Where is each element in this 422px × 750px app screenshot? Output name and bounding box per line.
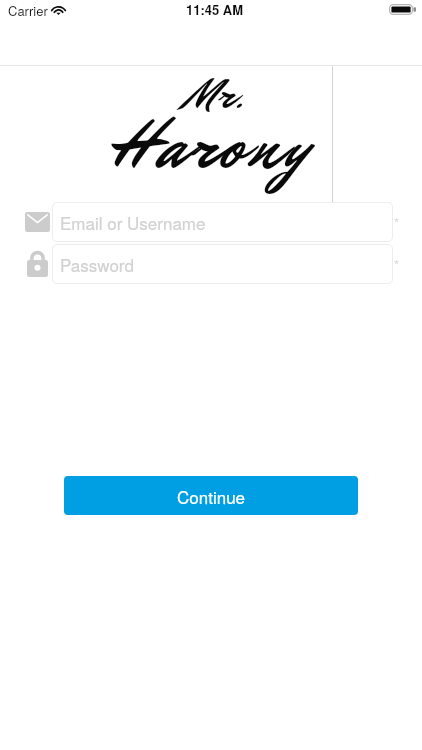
other: Battery <box>389 4 416 15</box>
staticText: 11:45 AM <box>186 0 244 19</box>
staticText: Carrier <box>8 1 48 20</box>
other: Password <box>27 251 48 277</box>
button[interactable]: Continue <box>64 476 358 515</box>
other: Wi-Fi <box>52 6 65 15</box>
staticText: Mr. <box>186 64 244 125</box>
staticText: Continue <box>177 484 246 508</box>
staticText: * <box>394 255 400 274</box>
staticText: Harony <box>112 97 312 196</box>
other: Email <box>25 212 50 232</box>
staticText: Password <box>60 252 134 276</box>
staticText: Email or Username <box>60 210 206 234</box>
staticText: * <box>394 213 400 232</box>
button[interactable]: Email or Username <box>52 202 393 242</box>
button[interactable]: Password <box>52 244 393 284</box>
